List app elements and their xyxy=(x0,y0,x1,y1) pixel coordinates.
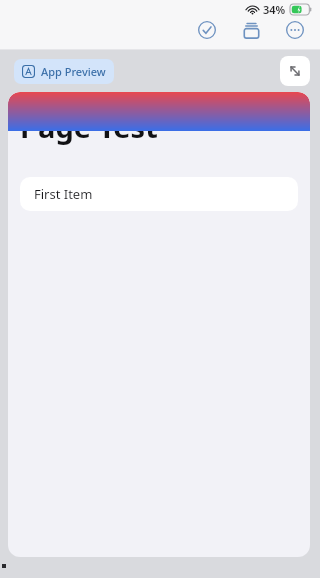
button[interactable]: More options xyxy=(280,15,310,45)
button[interactable]: Expand preview xyxy=(280,56,310,86)
button[interactable]: Checkmark xyxy=(192,15,222,45)
button[interactable]: Tabs xyxy=(236,15,266,45)
button[interactable]: App Preview xyxy=(14,59,114,84)
staticText: 34% xyxy=(263,2,286,17)
staticText: First Item xyxy=(34,185,93,203)
staticText: App Preview xyxy=(41,64,106,79)
button[interactable]: First Item xyxy=(20,177,298,211)
staticText: Page Test xyxy=(20,107,158,146)
